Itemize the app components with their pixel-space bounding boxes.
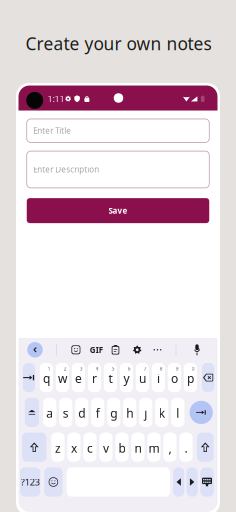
staticText: v <box>103 440 109 456</box>
button[interactable]: Symbols <box>20 467 40 497</box>
staticText: Save <box>108 205 127 216</box>
staticText: 1:11 <box>48 94 65 104</box>
button[interactable]: Switch keyboard <box>200 467 214 497</box>
staticText: GIF <box>90 344 103 355</box>
staticText: u <box>139 370 146 386</box>
button[interactable]: f <box>91 398 104 427</box>
button[interactable]: j <box>139 398 152 427</box>
button[interactable]: Enter Title <box>27 119 209 142</box>
staticText: a <box>46 405 53 421</box>
staticText: , <box>168 440 171 456</box>
staticText: 5 <box>111 365 114 372</box>
button[interactable]: y <box>120 363 133 392</box>
button[interactable]: r <box>88 363 101 392</box>
button[interactable]: t <box>104 363 117 392</box>
staticText: g <box>110 405 117 421</box>
staticText: o <box>171 370 178 386</box>
staticText: d <box>78 405 85 421</box>
button[interactable]: d <box>75 398 88 427</box>
staticText: 0 <box>191 365 194 372</box>
staticText: p <box>187 370 194 386</box>
staticText: f <box>96 405 100 421</box>
button[interactable]: Shift <box>197 433 214 462</box>
button[interactable]: , <box>163 433 176 462</box>
staticText: h <box>126 405 133 421</box>
staticText: 4 <box>95 365 98 372</box>
button[interactable]: z <box>51 433 64 462</box>
staticText: r <box>92 370 97 386</box>
staticText: ?123 <box>21 476 40 488</box>
button[interactable]: v <box>99 433 112 462</box>
button[interactable]: Keyboard settings <box>130 342 145 357</box>
staticText: c <box>87 440 93 456</box>
staticText: 6 <box>127 365 130 372</box>
button[interactable]: a <box>43 398 56 427</box>
button[interactable]: g <box>107 398 120 427</box>
button[interactable]: Clipboard <box>108 342 123 357</box>
staticText: t <box>108 370 112 386</box>
button[interactable]: o <box>168 363 181 392</box>
button[interactable]: l <box>171 398 184 427</box>
staticText: m <box>148 440 159 456</box>
button[interactable]: Tab <box>23 363 35 392</box>
staticText: j <box>144 405 147 421</box>
button[interactable]: Emoji <box>44 467 63 497</box>
staticText: n <box>134 440 141 456</box>
button[interactable]: Enter Description <box>27 151 209 188</box>
staticText: e <box>75 370 82 386</box>
button[interactable]: Back <box>26 341 44 359</box>
staticText: 7 <box>143 365 146 372</box>
button[interactable]: q <box>40 363 53 392</box>
button[interactable]: n <box>131 433 144 462</box>
staticText: 2 <box>63 365 66 372</box>
button[interactable]: Voice input <box>189 342 204 357</box>
button[interactable]: e <box>72 363 85 392</box>
staticText: 1 <box>47 365 50 372</box>
button[interactable]: Stickers <box>68 342 83 357</box>
button[interactable]: p <box>184 363 197 392</box>
button[interactable]: k <box>155 398 168 427</box>
button[interactable]: m <box>147 433 160 462</box>
button[interactable]: Shift <box>22 433 46 462</box>
button[interactable]: . <box>179 433 192 462</box>
button[interactable]: b <box>115 433 128 462</box>
button[interactable]: Move cursor right <box>186 467 198 497</box>
staticText: b <box>118 440 125 456</box>
staticText: l <box>176 405 179 421</box>
staticText: Enter Title <box>33 125 71 136</box>
button[interactable]: u <box>136 363 149 392</box>
staticText: Create your own notes <box>26 32 212 55</box>
button[interactable]: Backspace <box>202 363 214 392</box>
button[interactable]: GIF <box>88 342 105 357</box>
button[interactable]: x <box>67 433 80 462</box>
button[interactable]: w <box>56 363 69 392</box>
button[interactable]: Enter <box>189 398 213 427</box>
button[interactable]: c <box>83 433 96 462</box>
staticText: i <box>157 370 160 386</box>
staticText: z <box>55 440 61 456</box>
staticText: w <box>58 370 67 386</box>
button[interactable]: h <box>123 398 136 427</box>
staticText: 3 <box>79 365 82 372</box>
staticText: 9 <box>175 365 178 372</box>
staticText: k <box>159 405 165 421</box>
button[interactable]: Move cursor left <box>173 467 184 497</box>
button[interactable]: More options <box>150 342 165 357</box>
button[interactable]: Caps lock <box>25 398 39 427</box>
staticText: Enter Description <box>33 164 99 175</box>
button[interactable]: Save <box>27 198 209 223</box>
staticText: q <box>43 370 50 386</box>
staticText: x <box>71 440 77 456</box>
button[interactable]: i <box>152 363 165 392</box>
staticText: s <box>63 405 69 421</box>
staticText: . <box>184 440 187 456</box>
staticText: y <box>123 370 129 386</box>
staticText: 8 <box>159 365 162 372</box>
button[interactable]: s <box>59 398 72 427</box>
